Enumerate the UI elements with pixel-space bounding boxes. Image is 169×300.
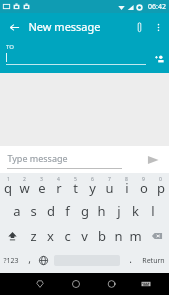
button[interactable]: Back <box>22 273 58 295</box>
button[interactable]: s <box>25 198 42 223</box>
staticText: ?123 <box>3 256 19 266</box>
staticText: l <box>151 202 155 220</box>
button[interactable]: 6 <box>84 173 101 198</box>
button[interactable]: . <box>123 248 138 273</box>
staticText: 6 <box>91 176 94 183</box>
staticText: 2 <box>23 176 26 183</box>
staticText: w <box>19 179 30 197</box>
staticText: a <box>13 202 21 220</box>
staticText: . <box>129 252 132 266</box>
button[interactable]: Add contact <box>151 51 167 67</box>
button[interactable]: v <box>76 223 93 248</box>
button[interactable]: Shift <box>0 223 25 248</box>
button[interactable]: ?123 <box>0 248 22 273</box>
staticText: 7 <box>108 176 111 183</box>
staticText: v <box>81 227 88 245</box>
staticText: TO <box>6 43 14 51</box>
button[interactable]: a <box>8 198 25 223</box>
button[interactable]: d <box>42 198 59 223</box>
staticText: n <box>114 227 123 245</box>
staticText: j <box>117 202 121 220</box>
staticText: u <box>105 179 114 197</box>
staticText: o <box>140 179 148 197</box>
button[interactable]: More options <box>149 18 167 36</box>
button[interactable]: z <box>25 223 42 248</box>
button[interactable]: 8 <box>118 173 135 198</box>
staticText: m <box>129 227 142 245</box>
button[interactable]: 5 <box>67 173 84 198</box>
staticText: e <box>38 179 46 197</box>
staticText: 06:42 <box>148 2 166 12</box>
staticText: y <box>89 179 96 197</box>
button[interactable]: c <box>59 223 76 248</box>
staticText: d <box>47 202 55 220</box>
staticText: 9 <box>142 176 145 183</box>
staticText: h <box>97 202 106 220</box>
staticText: c <box>64 227 71 245</box>
staticText: z <box>30 227 37 245</box>
button[interactable]: Back <box>4 17 24 37</box>
button[interactable]: x <box>42 223 59 248</box>
button[interactable]: b <box>93 223 110 248</box>
button[interactable]: Switch keyboard <box>130 273 162 295</box>
button[interactable]: 7 <box>101 173 118 198</box>
button[interactable]: 1 <box>0 173 16 198</box>
staticText: Return <box>142 256 165 266</box>
button[interactable]: , <box>22 248 36 273</box>
button[interactable]: g <box>76 198 93 223</box>
button[interactable]: h <box>93 198 110 223</box>
staticText: 5 <box>74 176 77 183</box>
staticText: f <box>65 202 70 220</box>
staticText: 1 <box>7 176 10 183</box>
staticText: k <box>132 202 139 220</box>
staticText: 8 <box>125 176 128 183</box>
button[interactable]: j <box>110 198 127 223</box>
button[interactable]: Home <box>58 273 94 295</box>
staticText: p <box>157 179 165 197</box>
staticText: , <box>28 252 31 266</box>
staticText: t <box>73 179 78 197</box>
staticText: q <box>4 179 12 197</box>
staticText: r <box>56 179 62 197</box>
button[interactable]: Send <box>143 150 163 170</box>
staticText: New message <box>28 19 101 34</box>
button[interactable]: n <box>110 223 127 248</box>
button[interactable]: 9 <box>135 173 152 198</box>
staticText: Type message <box>7 152 68 164</box>
button[interactable]: 0 <box>152 173 169 198</box>
button[interactable]: Change language <box>36 248 51 273</box>
staticText: 4 <box>57 176 60 183</box>
button[interactable]: 2 <box>16 173 33 198</box>
button[interactable]: 3 <box>33 173 50 198</box>
staticText: s <box>30 202 37 220</box>
button[interactable]: l <box>144 198 161 223</box>
button[interactable]: k <box>127 198 144 223</box>
staticText: 0 <box>159 176 162 183</box>
button[interactable]: Return <box>138 248 169 273</box>
button[interactable]: Recent apps <box>94 273 130 295</box>
button[interactable]: f <box>59 198 76 223</box>
staticText: b <box>98 227 106 245</box>
staticText: 3 <box>40 176 43 183</box>
staticText: g <box>81 202 89 220</box>
button[interactable]: Backspace <box>144 223 169 248</box>
button[interactable]: Attach <box>129 17 149 37</box>
staticText: i <box>125 179 129 197</box>
button[interactable]: m <box>127 223 144 248</box>
button[interactable]: 4 <box>50 173 67 198</box>
staticText: x <box>47 227 54 245</box>
